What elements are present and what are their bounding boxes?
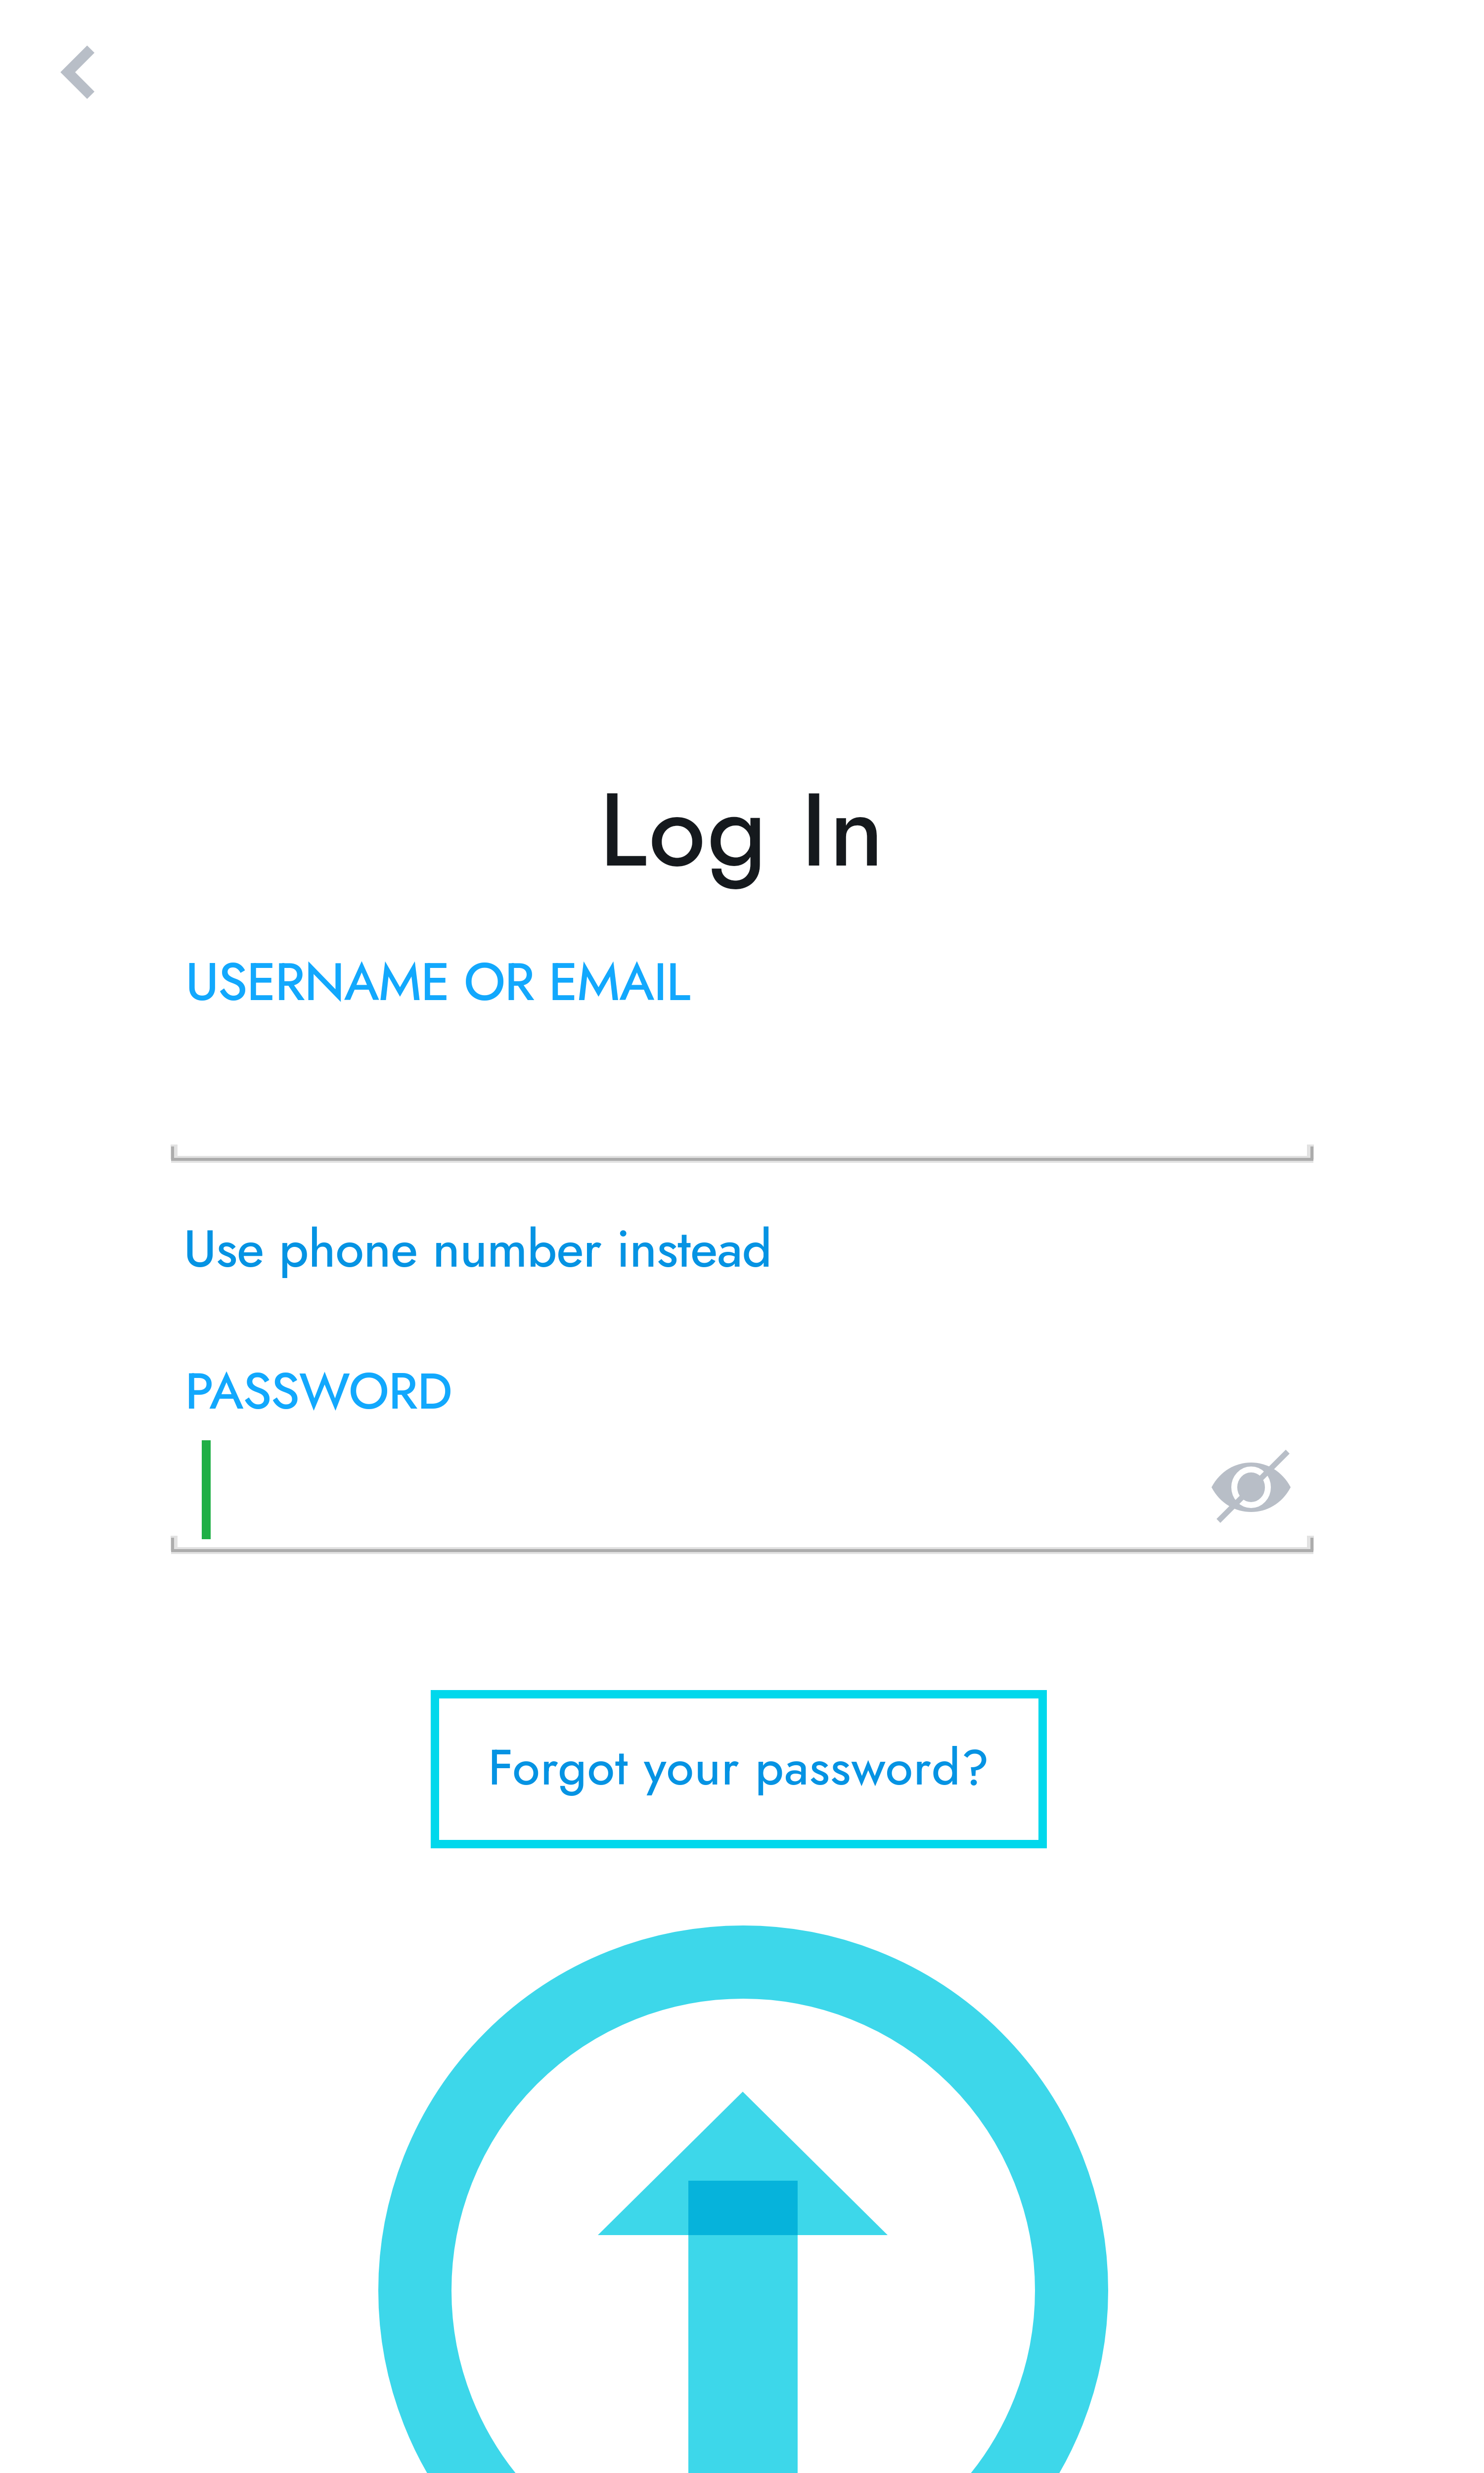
button[interactable]: Show password bbox=[1202, 1439, 1301, 1538]
button[interactable]: Use phone number instead bbox=[183, 1212, 772, 1286]
button[interactable]: Forgot your password? bbox=[431, 1690, 1047, 1848]
button[interactable]: Upload bbox=[378, 1925, 1108, 2473]
staticText: Log In bbox=[599, 755, 886, 904]
staticText: Use phone number instead bbox=[183, 1212, 772, 1286]
button[interactable]: Back bbox=[18, 10, 141, 134]
staticText: Forgot your password? bbox=[488, 1732, 990, 1803]
staticText: USERNAME OR EMAIL bbox=[185, 944, 690, 1020]
staticText: PASSWORD bbox=[185, 1354, 452, 1428]
